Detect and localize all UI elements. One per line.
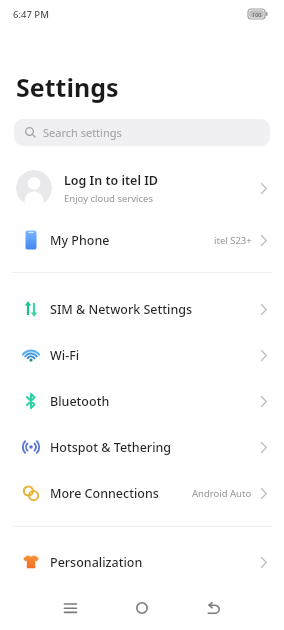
staticText: My Phone xyxy=(50,232,110,249)
staticText: Enjoy cloud services xyxy=(64,192,153,205)
button[interactable]: SIM & Network Settings xyxy=(0,286,284,332)
button[interactable]: Log In to itel ID xyxy=(0,161,284,215)
button[interactable]: Wi-Fi xyxy=(0,332,284,378)
staticText: Personalization xyxy=(50,554,143,571)
button[interactable]: More Connections xyxy=(0,470,284,516)
staticText: Search settings xyxy=(43,125,122,140)
button[interactable]: Hotspot & Tethering xyxy=(0,424,284,470)
staticText: Hotspot & Tethering xyxy=(50,439,172,456)
staticText: Bluetooth xyxy=(50,393,110,410)
staticText: More Connections xyxy=(50,485,159,502)
button[interactable]: My Phone xyxy=(0,217,284,263)
staticText: itel S23+ xyxy=(214,234,252,247)
button[interactable] xyxy=(201,586,225,630)
staticText: 6:47 PM xyxy=(13,8,49,21)
staticText: Settings xyxy=(16,70,119,104)
button[interactable]: Search settings xyxy=(14,119,270,146)
staticText: Log In to itel ID xyxy=(64,172,158,189)
staticText: Wi-Fi xyxy=(50,347,80,364)
button[interactable]: Bluetooth xyxy=(0,378,284,424)
button[interactable]: Personalization xyxy=(0,539,284,585)
staticText: SIM & Network Settings xyxy=(50,301,193,318)
staticText: 100 xyxy=(252,11,262,18)
button[interactable] xyxy=(130,586,154,630)
staticText: Android Auto xyxy=(192,487,252,500)
button[interactable] xyxy=(58,586,82,630)
